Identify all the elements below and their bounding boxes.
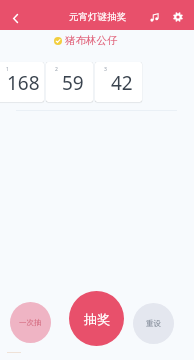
button[interactable]: 一次抽 xyxy=(10,302,51,343)
button[interactable]: Settings xyxy=(167,6,189,28)
button[interactable]: Music xyxy=(143,6,165,28)
staticText: 59 xyxy=(62,70,84,96)
staticText: 42 xyxy=(111,70,133,96)
staticText: 猪布林公仔 xyxy=(65,34,118,47)
staticText: 元宵灯谜抽奖 xyxy=(69,11,126,23)
button[interactable]: 抽奖 xyxy=(69,291,124,346)
button[interactable]: 重设 xyxy=(133,303,174,344)
button[interactable]: 3 xyxy=(95,62,142,102)
staticText: 2 xyxy=(55,66,58,73)
staticText: 一次抽 xyxy=(19,318,42,327)
staticText: 168 xyxy=(7,70,40,96)
staticText: 1 xyxy=(6,66,9,73)
button[interactable]: Back xyxy=(2,5,28,31)
staticText: 抽奖 xyxy=(84,311,110,327)
button[interactable]: 1 xyxy=(0,62,44,102)
staticText: 3 xyxy=(104,66,107,73)
button[interactable]: 2 xyxy=(46,62,93,102)
staticText: 重设 xyxy=(146,319,161,328)
